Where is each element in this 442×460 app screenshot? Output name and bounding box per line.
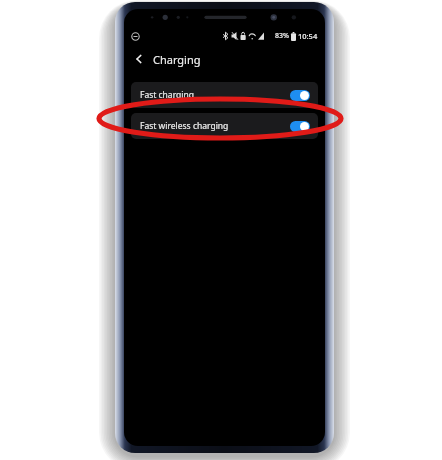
button[interactable]: Fast charging toggle, on (290, 90, 310, 101)
staticText: Fast wireless charging (140, 120, 290, 132)
staticText: Charging (153, 52, 201, 67)
button[interactable]: Fast charging (131, 82, 318, 108)
button[interactable]: Fast wireless charging toggle, on (290, 121, 310, 132)
staticText: 10:54 (298, 31, 318, 41)
button[interactable]: Fast wireless charging (131, 113, 318, 139)
button[interactable]: Back (130, 50, 148, 68)
staticText: 83% (275, 31, 289, 41)
staticText: Fast charging (140, 89, 290, 101)
